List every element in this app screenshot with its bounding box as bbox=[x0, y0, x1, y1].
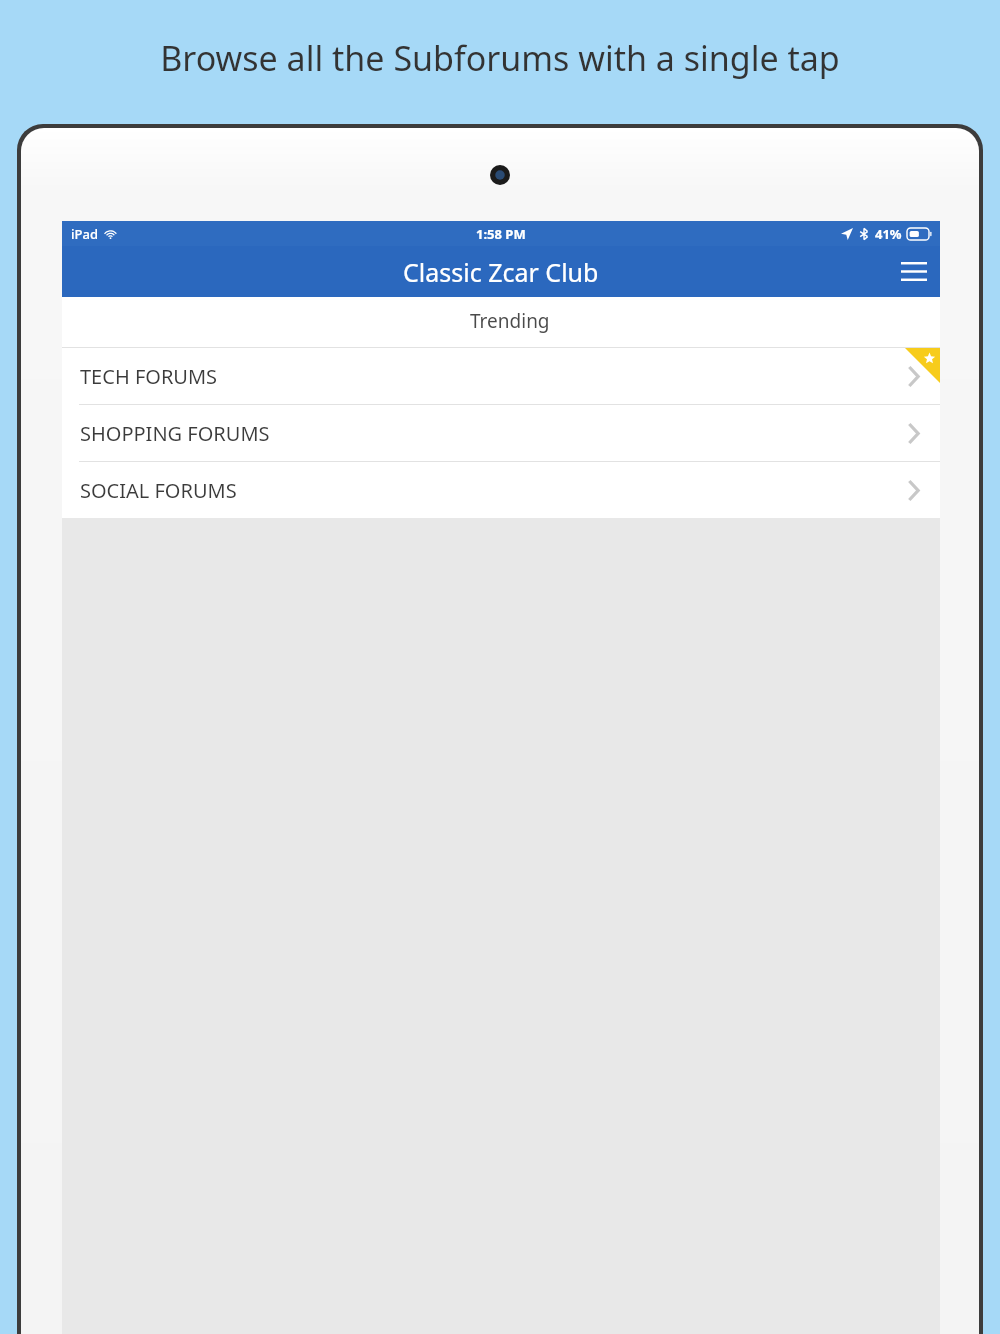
button[interactable]: SHOPPING FORUMS bbox=[62, 405, 940, 461]
staticText: Browse all the Subforums with a single t… bbox=[160, 35, 840, 81]
staticText: Trending bbox=[470, 308, 550, 334]
button[interactable]: Menu bbox=[888, 246, 940, 297]
button[interactable]: SOCIAL FORUMS bbox=[62, 462, 940, 518]
staticText: 41% bbox=[875, 225, 902, 243]
staticText: iPad bbox=[71, 225, 98, 243]
staticText: SOCIAL FORUMS bbox=[80, 477, 237, 504]
button[interactable]: Trending bbox=[79, 297, 940, 348]
staticText: TECH FORUMS bbox=[80, 363, 218, 390]
staticText: Classic Zcar Club bbox=[403, 255, 599, 289]
staticText: 1:58 PM bbox=[476, 225, 526, 243]
button[interactable]: TECH FORUMS bbox=[62, 348, 940, 404]
staticText: SHOPPING FORUMS bbox=[80, 420, 270, 447]
